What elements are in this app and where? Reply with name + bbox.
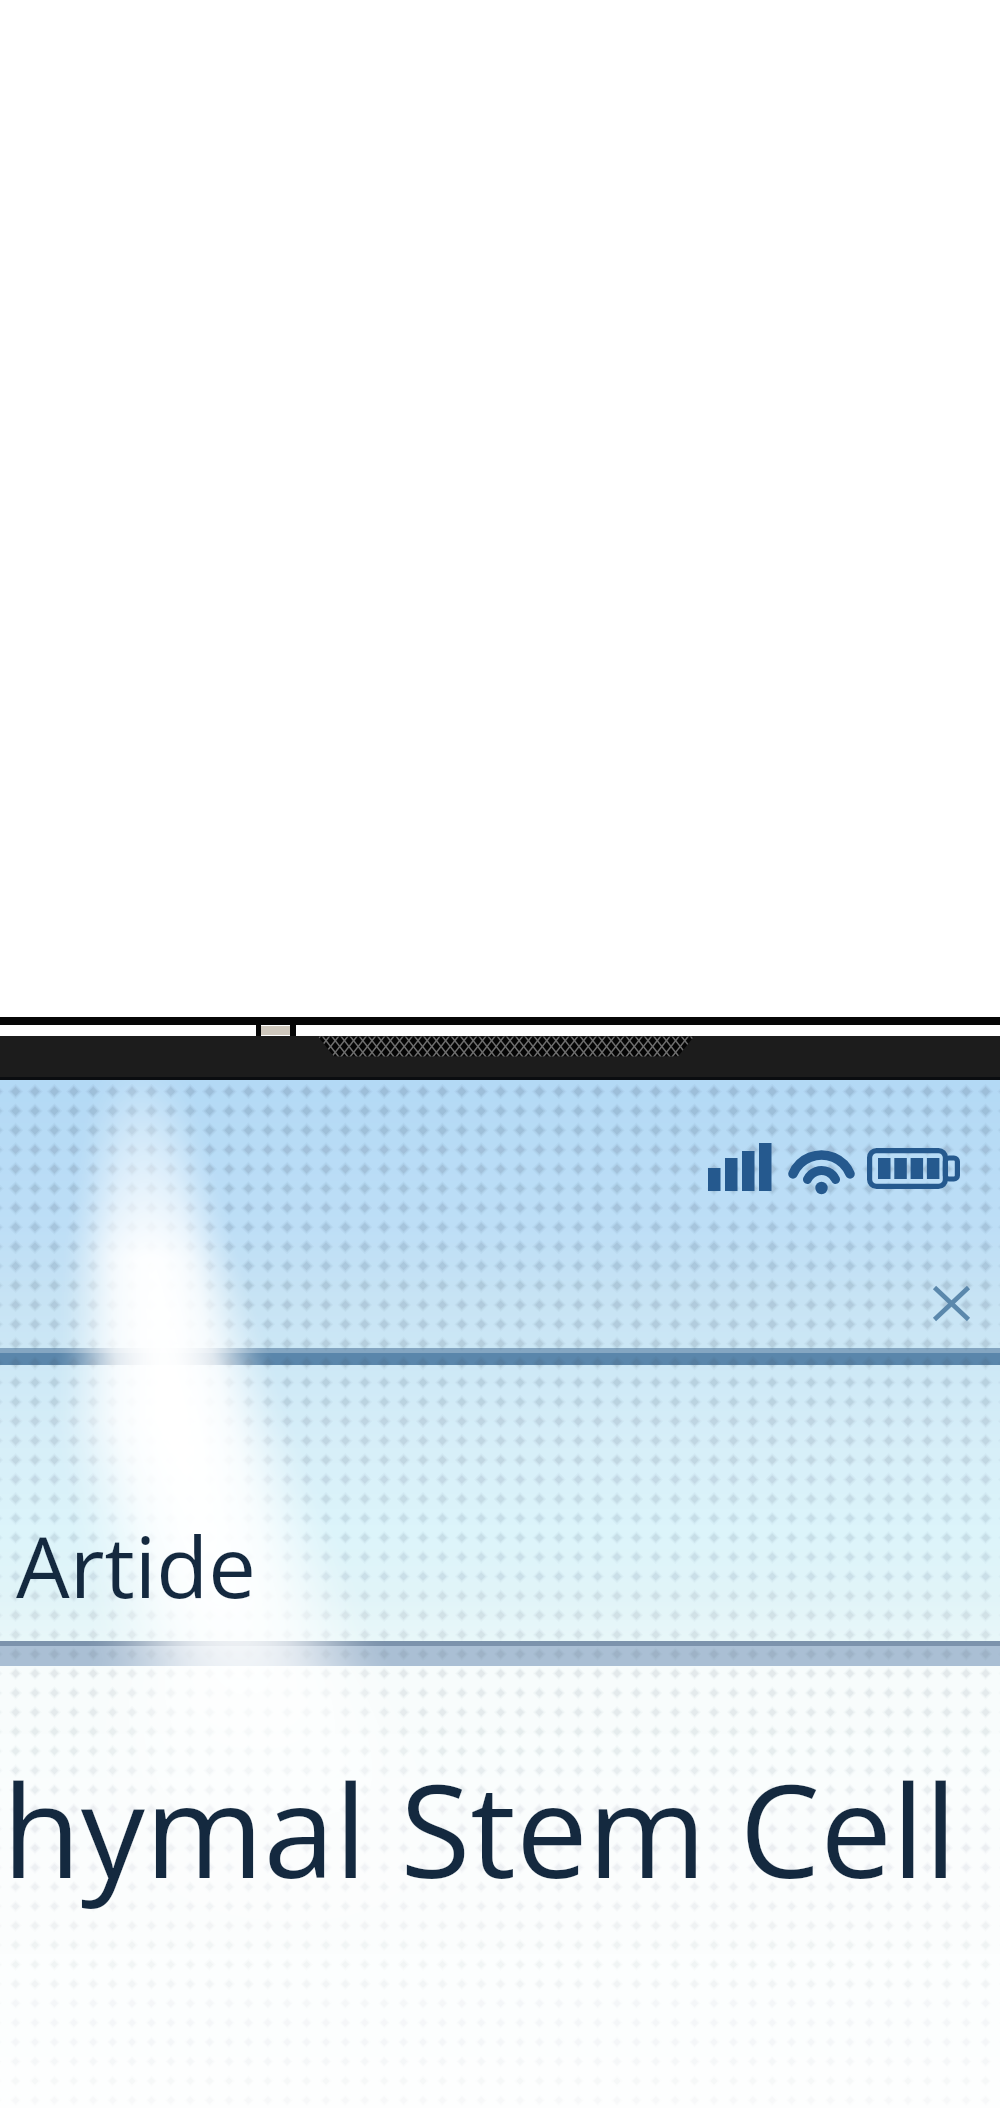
staticText: chymal Stem Cell [0, 1741, 1000, 1915]
button[interactable]: Close [908, 1262, 992, 1346]
button[interactable]: Artide [0, 1365, 1000, 1646]
button[interactable] [0, 1666, 1000, 2108]
staticText: Artide [16, 1507, 256, 1623]
